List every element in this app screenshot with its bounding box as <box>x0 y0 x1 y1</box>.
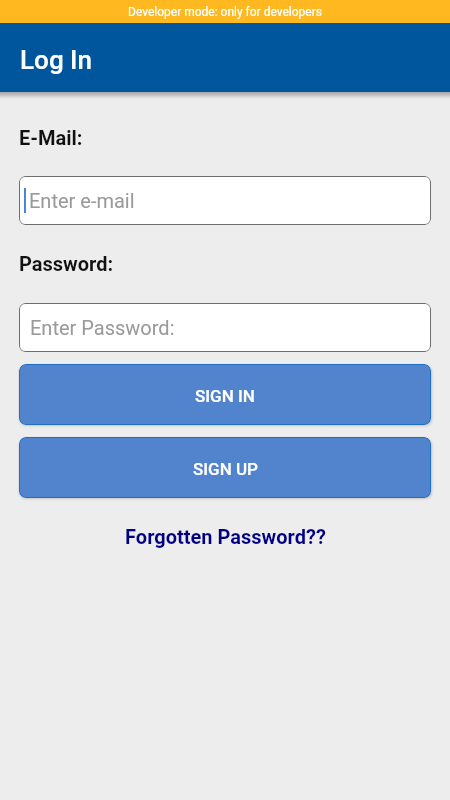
staticText: Log In <box>20 45 92 75</box>
staticText: Developer mode: only for developers <box>128 5 322 19</box>
staticText: Enter Password: <box>30 316 175 339</box>
staticText: Enter e-mail <box>29 189 135 212</box>
button[interactable]: SIGN IN <box>19 364 431 425</box>
button[interactable]: Password input field <box>19 303 431 352</box>
staticText: SIGN IN <box>195 386 255 406</box>
button[interactable]: E-Mail input field <box>19 176 431 225</box>
button[interactable]: Forgotten Password?? <box>19 525 431 548</box>
staticText: Password: <box>19 252 114 275</box>
staticText: Forgotten Password?? <box>125 525 326 548</box>
button[interactable]: SIGN UP <box>19 437 431 498</box>
staticText: E-Mail: <box>19 126 83 149</box>
staticText: SIGN UP <box>193 459 258 479</box>
